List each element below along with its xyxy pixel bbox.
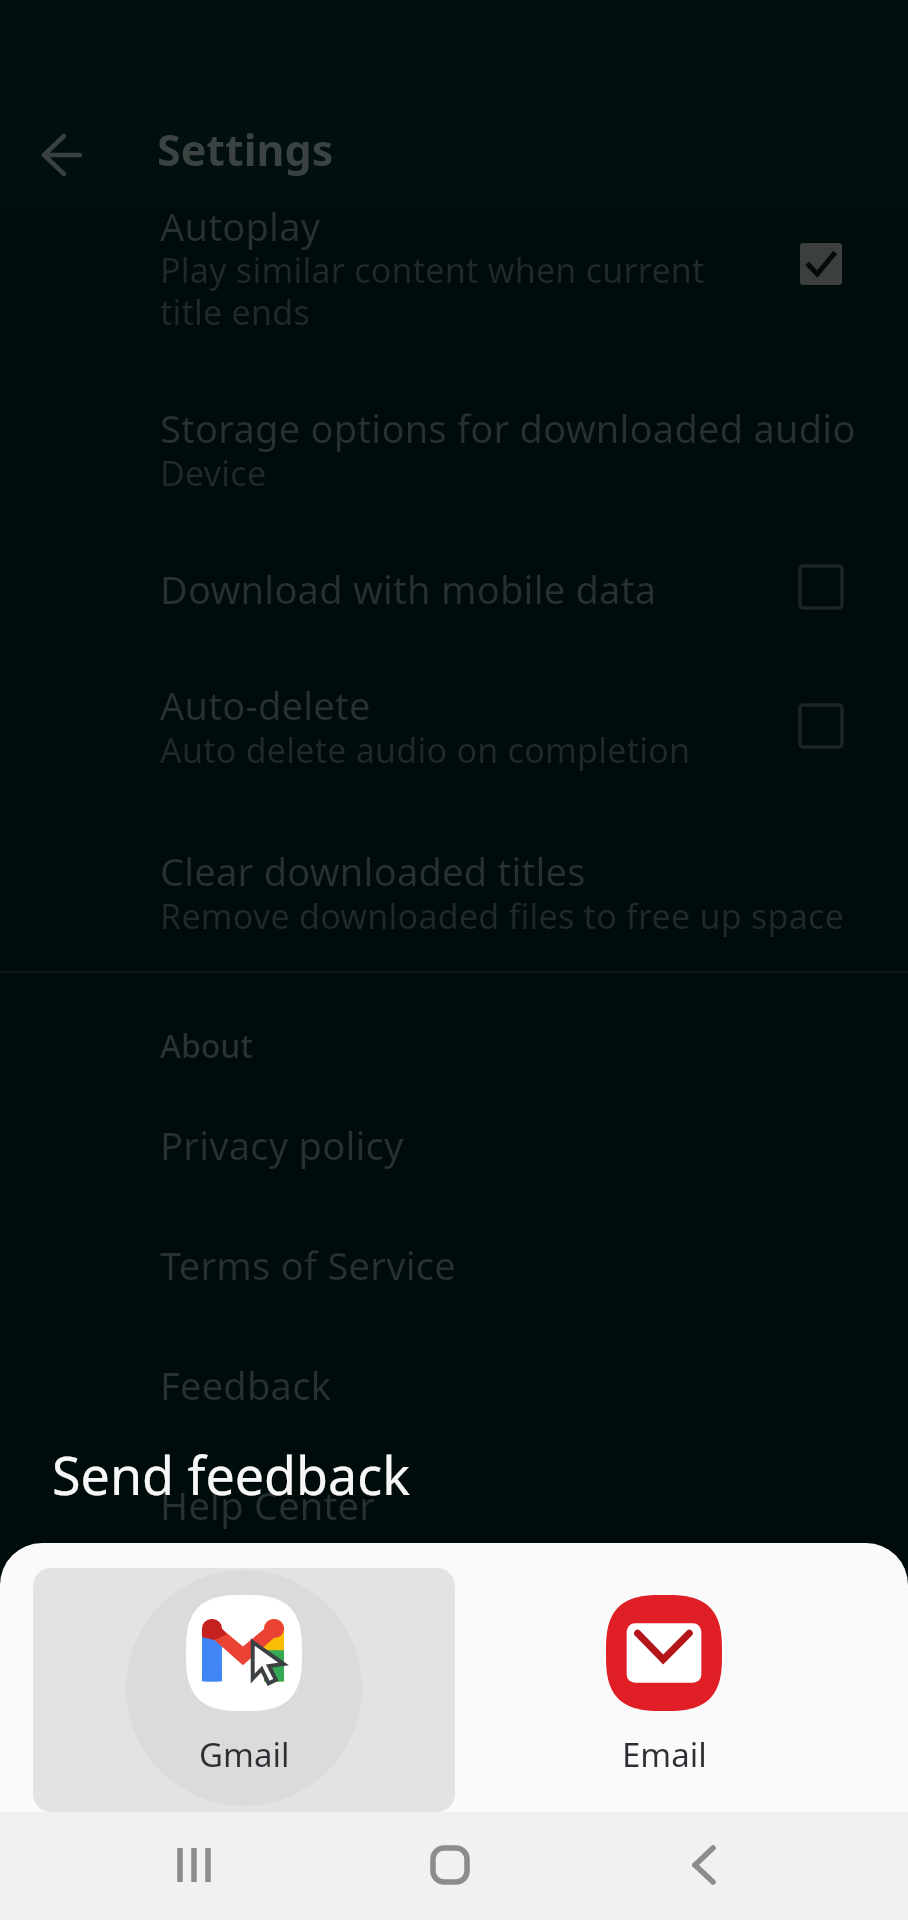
- staticText: Terms of Service: [160, 1239, 456, 1291]
- staticText: Autoplay: [160, 200, 321, 252]
- staticText: Clear downloaded titles: [160, 845, 586, 897]
- staticText: Gmail: [199, 1732, 290, 1777]
- staticText: Help Center: [160, 1479, 376, 1531]
- button[interactable]: Help Center: [0, 1445, 908, 1555]
- staticText: Auto-delete: [160, 679, 371, 731]
- staticText: Remove downloaded files to free up space: [160, 893, 845, 939]
- staticText: Storage options for downloaded audio: [160, 402, 856, 454]
- button[interactable]: Feedback: [0, 1325, 908, 1435]
- staticText: Email: [622, 1732, 707, 1777]
- button[interactable]: Back: [664, 1825, 744, 1905]
- staticText: Download with mobile data: [160, 563, 657, 615]
- staticText: Auto delete audio on completion: [160, 727, 691, 773]
- staticText: Settings: [157, 120, 334, 179]
- button[interactable]: Auto-delete: [0, 650, 908, 785]
- staticText: title ends: [160, 289, 310, 335]
- button[interactable]: Terms of Service: [0, 1205, 908, 1315]
- staticText: Play similar content when current: [160, 247, 705, 293]
- button[interactable]: Email: [453, 1568, 875, 1812]
- button[interactable]: Back: [18, 120, 90, 192]
- staticText: Device: [160, 450, 267, 496]
- button[interactable]: Checked: [800, 243, 842, 285]
- button[interactable]: Privacy policy: [0, 1085, 908, 1195]
- staticText: About: [160, 1024, 253, 1068]
- staticText: Send feedback: [52, 1439, 410, 1510]
- button[interactable]: Storage options for downloaded audio: [0, 370, 908, 505]
- button[interactable]: Unchecked: [800, 566, 842, 608]
- button[interactable]: Download with mobile data: [0, 530, 908, 640]
- staticText: Privacy policy: [160, 1119, 404, 1171]
- staticText: Feedback: [160, 1359, 332, 1411]
- button[interactable]: Home: [410, 1825, 490, 1905]
- button[interactable]: Clear downloaded titles: [0, 812, 908, 947]
- button[interactable]: Autoplay: [0, 207, 908, 357]
- button[interactable]: Gmail: [33, 1568, 455, 1812]
- button[interactable]: Unchecked: [800, 705, 842, 747]
- button[interactable]: Recent apps: [154, 1825, 234, 1905]
